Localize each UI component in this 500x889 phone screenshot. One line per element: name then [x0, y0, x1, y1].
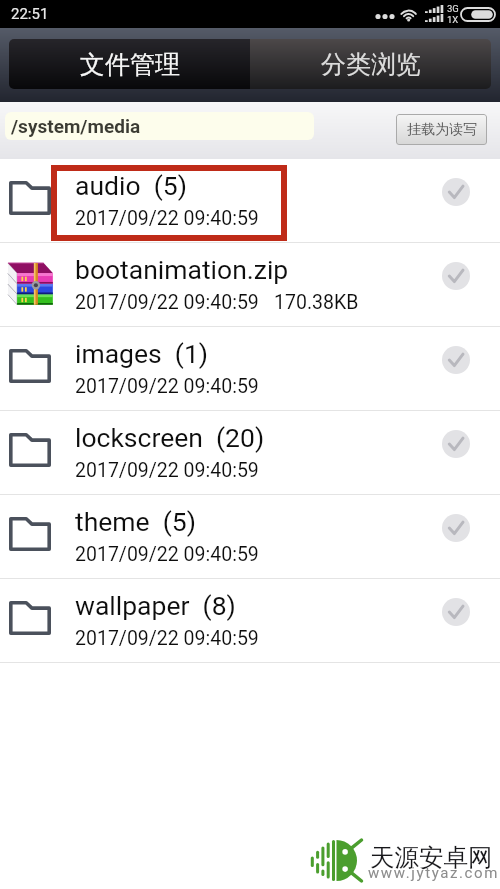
- staticText: 1X: [447, 14, 459, 25]
- staticText: wallpaper (8): [75, 590, 236, 621]
- staticText: 170.38KB: [274, 291, 359, 314]
- button[interactable]: audio (5): [0, 159, 500, 242]
- staticText: images (1): [75, 338, 209, 369]
- staticText: 2017/09/22 09:40:59: [75, 207, 259, 230]
- button[interactable]: 文件管理: [9, 39, 250, 89]
- staticText: 天源安卓网: [370, 842, 493, 873]
- staticText: 分类浏览: [321, 49, 421, 80]
- other: Select: [442, 430, 470, 458]
- staticText: 挂载为读写: [407, 121, 477, 139]
- staticText: www.jytyaz.com: [368, 864, 499, 882]
- staticText: theme (5): [75, 506, 196, 537]
- button[interactable]: wallpaper (8): [0, 579, 500, 662]
- button[interactable]: lockscreen (20): [0, 411, 500, 494]
- staticText: lockscreen (20): [75, 422, 265, 453]
- button[interactable]: 挂载为读写: [396, 114, 487, 145]
- other: More: [375, 10, 395, 22]
- staticText: 2017/09/22 09:40:59: [75, 627, 259, 650]
- staticText: /system/media: [11, 115, 141, 137]
- staticText: audio (5): [75, 170, 187, 201]
- other: Select: [442, 178, 470, 206]
- staticText: bootanimation.zip: [75, 254, 289, 285]
- other: Select: [442, 514, 470, 542]
- button[interactable]: bootanimation.zip: [0, 243, 500, 326]
- button[interactable]: theme (5): [0, 495, 500, 578]
- staticText: 2017/09/22 09:40:59: [75, 543, 259, 566]
- button[interactable]: /system/media: [5, 112, 314, 140]
- staticText: 2017/09/22 09:40:59: [75, 459, 259, 482]
- staticText: 2017/09/22 09:40:59: [75, 375, 259, 398]
- button[interactable]: images (1): [0, 327, 500, 410]
- staticText: 2017/09/22 09:40:59: [75, 291, 259, 314]
- other: Select: [442, 598, 470, 626]
- other: Select: [442, 262, 470, 290]
- other: Select: [442, 346, 470, 374]
- staticText: 文件管理: [80, 49, 180, 80]
- staticText: 3G: [447, 3, 459, 14]
- staticText: 22:51: [11, 5, 49, 23]
- button[interactable]: 分类浏览: [250, 39, 491, 89]
